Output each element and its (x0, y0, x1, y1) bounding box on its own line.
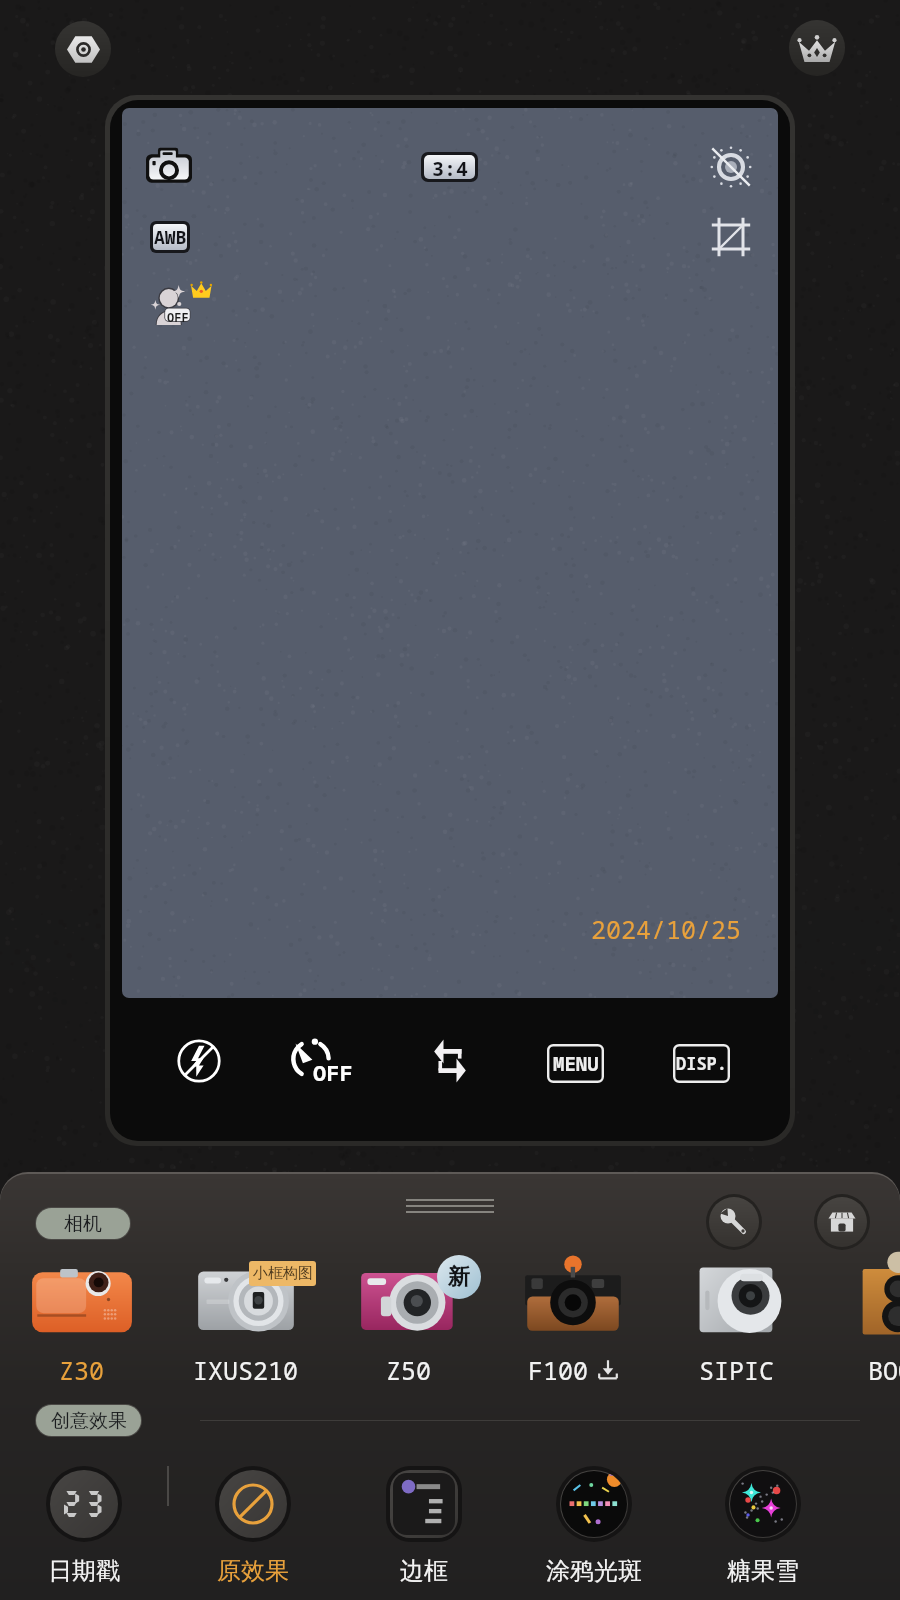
staticText: OFF (313, 1057, 353, 1087)
staticText: IXUS210 (193, 1353, 299, 1387)
button[interactable]: Flash off (168, 1030, 230, 1092)
button[interactable]: Flash off (705, 141, 757, 193)
staticText: BOOT (868, 1353, 900, 1387)
button[interactable]: MENU (547, 1044, 604, 1083)
button[interactable]: Camera settings (709, 1197, 759, 1247)
staticText: 糖果雪 (727, 1556, 799, 1586)
button[interactable] (182, 1253, 310, 1343)
staticText: 创意效果 (51, 1409, 127, 1433)
button[interactable] (509, 1253, 637, 1343)
button[interactable]: 糖果雪 (701, 1466, 825, 1586)
staticText: 2024/10/25 (591, 912, 742, 946)
button[interactable]: 相机 (36, 1208, 130, 1239)
staticText: OFF (167, 309, 189, 325)
staticText: DISP. (676, 1052, 727, 1075)
button[interactable]: Beauty off (152, 283, 214, 325)
button[interactable]: Self timer off (288, 1030, 358, 1092)
button[interactable]: 小框构图 (249, 1261, 316, 1286)
button[interactable]: Settings (55, 21, 111, 77)
button[interactable] (834, 1253, 900, 1343)
button[interactable]: 创意效果 (36, 1405, 141, 1436)
button[interactable]: Store (817, 1197, 867, 1247)
button[interactable]: Switch camera (419, 1030, 481, 1092)
button[interactable] (18, 1253, 146, 1343)
button[interactable]: 新 (437, 1255, 481, 1299)
staticText: 涂鸦光斑 (546, 1556, 642, 1586)
button[interactable] (673, 1253, 801, 1343)
staticText: Z50 (386, 1353, 432, 1387)
staticText: AWB (154, 225, 187, 250)
button[interactable]: 涂鸦光斑 (532, 1466, 656, 1586)
button[interactable] (345, 1253, 473, 1343)
staticText: 边框 (400, 1556, 448, 1586)
button[interactable]: DISP. (673, 1044, 730, 1083)
button[interactable]: Premium (789, 20, 845, 76)
staticText: 原效果 (217, 1556, 289, 1586)
staticText: MENU (553, 1051, 599, 1077)
button[interactable]: 3:4 (421, 152, 478, 182)
button[interactable]: 原效果 (191, 1466, 315, 1586)
staticText: 日期戳 (48, 1556, 120, 1586)
staticText: Z30 (59, 1353, 105, 1387)
staticText: 相机 (64, 1212, 102, 1236)
button[interactable]: AWB (150, 221, 190, 253)
staticText: F100 (528, 1353, 589, 1387)
button[interactable]: Camera mode (143, 142, 195, 194)
staticText: 小框构图 (253, 1264, 313, 1283)
staticText: 3:4 (432, 155, 468, 179)
staticText: 新 (448, 1263, 470, 1291)
button[interactable]: 边框 (362, 1466, 486, 1586)
staticText: SIPIC (699, 1353, 775, 1387)
button[interactable]: Crop (708, 214, 754, 260)
button[interactable]: 日期戳 (22, 1466, 146, 1586)
